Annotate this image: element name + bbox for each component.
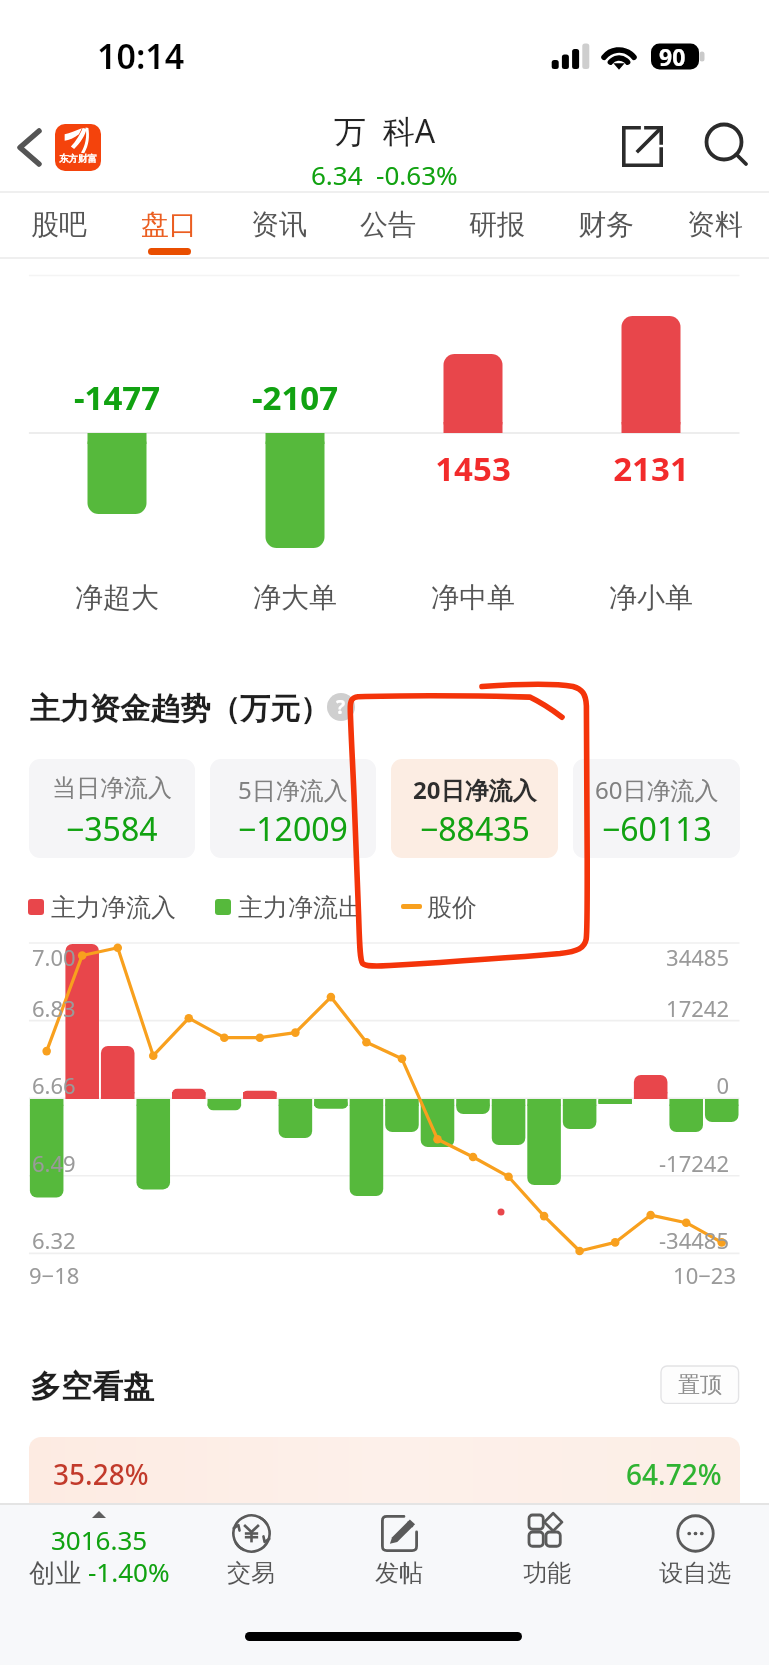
button[interactable]: 设自选 [621,1503,769,1623]
staticText: 2131 [571,446,731,491]
staticText: 资讯 [251,207,307,242]
button[interactable]: 60日净流入 [573,759,740,858]
staticText: 财务 [578,207,634,242]
button[interactable]: 当日净流入 [29,759,195,858]
staticText: 6.34 -0.63% [311,157,458,192]
staticText: 5日净流入 [238,773,348,806]
staticText: 0 [500,1070,729,1100]
staticText: -34485 [500,1225,729,1255]
staticText: 主力资金趋势（万元） [30,690,330,728]
staticText: 多空看盘 [30,1367,154,1406]
staticText: -1477 [37,375,197,420]
staticText: 10−23 [500,1260,736,1290]
staticText: 当日净流入 [52,773,172,803]
button[interactable]: 20日净流入 [391,759,558,858]
button[interactable]: 交易 [177,1503,325,1623]
staticText: 1453 [393,446,553,491]
staticText: 股吧 [31,207,87,242]
button[interactable]: Information [327,693,355,721]
staticText: -1.40% [88,1554,170,1589]
staticText: −60113 [602,807,712,851]
button[interactable]: 研报 [442,193,551,257]
staticText: 盘口 [141,207,197,242]
button[interactable]: East Money home [55,124,101,171]
staticText: 净大单 [215,580,375,615]
button[interactable]: 盘口 [114,193,224,257]
staticText: 净中单 [393,580,553,615]
staticText: 20日净流入 [413,773,537,806]
staticText: 资料 [687,207,743,242]
staticText: ? [336,694,346,720]
button[interactable]: 股吧 [4,193,114,257]
staticText: −12009 [238,807,348,851]
staticText: -2107 [215,375,375,420]
staticText: 净超大 [37,580,197,615]
staticText: 功能 [523,1558,571,1588]
button[interactable]: 功能 [473,1503,621,1623]
staticText: 股价 [427,892,477,923]
button[interactable]: 置顶 [661,1366,739,1403]
button[interactable]: 资讯 [224,193,333,257]
staticText: 10:14 [97,33,185,79]
staticText: 万 科A [334,109,436,153]
staticText: 研报 [469,207,525,242]
staticText: -17242 [500,1148,729,1178]
staticText: 35.28% [53,1455,149,1493]
staticText: 发帖 [375,1558,423,1588]
staticText: 3016.35 [51,1522,148,1557]
button[interactable]: 财务 [551,193,660,257]
staticText: 34485 [500,942,729,972]
staticText: 置顶 [678,1371,722,1399]
staticText: 6.32 [32,1225,76,1255]
staticText: 6.66 [32,1070,76,1100]
staticText: 64.72% [626,1455,722,1493]
staticText: 17242 [500,993,729,1023]
button[interactable]: 5日净流入 [210,759,376,858]
staticText: 7.00 [32,942,76,972]
staticText: 主力净流出 [238,892,363,923]
button[interactable]: 发帖 [325,1503,473,1623]
button[interactable]: 公告 [333,193,442,257]
staticText: −88435 [420,807,530,851]
button[interactable]: Back [6,122,54,174]
staticText: 9−18 [29,1260,80,1290]
staticText: 主力净流入 [51,892,176,923]
button[interactable]: 3016.35 [3,1503,177,1623]
staticText: 净小单 [571,580,731,615]
staticText: 东方财富 [59,153,97,165]
staticText: 交易 [227,1558,275,1588]
staticText: 设自选 [659,1558,731,1588]
staticText: −3584 [66,807,158,851]
staticText: 创业 [29,1554,88,1590]
staticText: 60日净流入 [595,773,719,806]
staticText: 90 [659,41,686,72]
staticText: 6.49 [32,1148,76,1178]
staticText: 公告 [360,207,416,242]
button[interactable]: Search [692,113,756,177]
staticText: 6.83 [32,993,76,1023]
button[interactable]: 资料 [660,193,769,257]
button[interactable]: Share [606,115,668,177]
